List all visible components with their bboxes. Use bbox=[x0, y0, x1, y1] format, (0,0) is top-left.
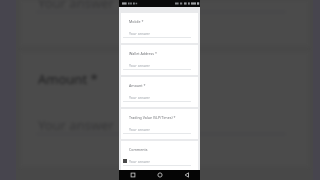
staticText: Comments bbox=[129, 147, 148, 152]
button[interactable]: Comments bbox=[121, 141, 198, 171]
staticText: Your answer bbox=[129, 31, 150, 36]
staticText: Your answer bbox=[129, 63, 150, 68]
staticText: Your answer bbox=[129, 95, 150, 100]
button[interactable]: Wallet Address * bbox=[121, 45, 198, 75]
button[interactable]: Home bbox=[146, 170, 173, 180]
staticText: Amount * bbox=[129, 83, 146, 88]
staticText: Your answer bbox=[129, 127, 150, 132]
button[interactable]: Trading Value (SLP/Times) * bbox=[121, 109, 198, 139]
button[interactable]: Mobile * bbox=[121, 13, 198, 43]
button[interactable]: Back bbox=[173, 170, 200, 180]
staticText: Mobile * bbox=[129, 19, 144, 24]
staticText: Your answer bbox=[129, 159, 150, 164]
button[interactable]: Recent apps bbox=[119, 170, 146, 180]
staticText: Wallet Address * bbox=[129, 51, 157, 56]
button[interactable]: Amount * bbox=[121, 77, 198, 107]
staticText: Amount * bbox=[38, 70, 98, 88]
staticText: Trading Value (SLP/Times) * bbox=[129, 115, 176, 120]
